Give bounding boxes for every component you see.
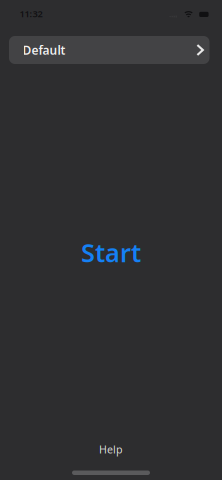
button[interactable]: Default (9, 36, 209, 64)
button[interactable]: Start (81, 235, 141, 269)
staticText: Start (81, 235, 141, 269)
staticText: 11:32 (19, 7, 42, 20)
button[interactable]: Help (99, 442, 123, 456)
staticText: Default (22, 42, 65, 58)
staticText: Help (99, 442, 123, 456)
